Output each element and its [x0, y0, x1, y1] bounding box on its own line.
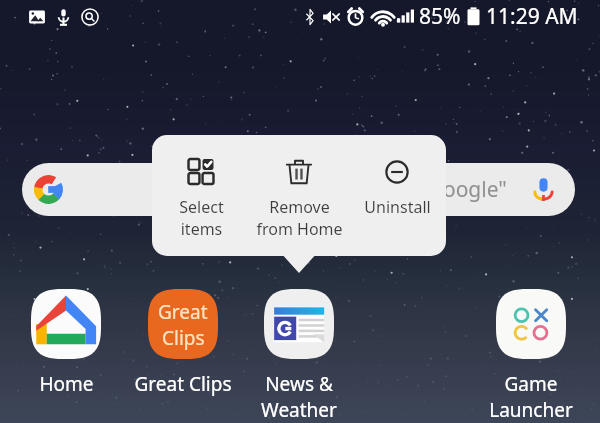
staticText: Game Launcher	[489, 371, 573, 422]
staticText: Home	[39, 371, 94, 397]
button[interactable]: Home	[9, 289, 123, 397]
button[interactable]: Uninstall	[348, 159, 446, 218]
staticText: "Ok Google"	[386, 175, 507, 204]
button[interactable]: Game Launcher	[474, 289, 588, 422]
staticText: Select items	[179, 196, 224, 240]
staticText: 11:29 AM	[486, 2, 578, 31]
staticText: Remove from Home	[256, 196, 343, 240]
staticText: 85%	[419, 2, 461, 31]
button[interactable]: News & Weather	[242, 289, 356, 422]
staticText: News & Weather	[261, 371, 337, 422]
staticText: Great Clips	[134, 371, 232, 397]
button[interactable]: Google Search	[26, 167, 71, 212]
button[interactable]: Great	[126, 289, 240, 397]
button[interactable]: Voice search	[521, 167, 566, 212]
button[interactable]: Remove from Home	[250, 159, 348, 240]
staticText: Clips	[162, 325, 205, 351]
staticText: Great	[158, 299, 208, 325]
button[interactable]: Select items	[152, 159, 250, 240]
button[interactable]: Google Search	[22, 163, 575, 216]
staticText: Uninstall	[364, 196, 431, 218]
